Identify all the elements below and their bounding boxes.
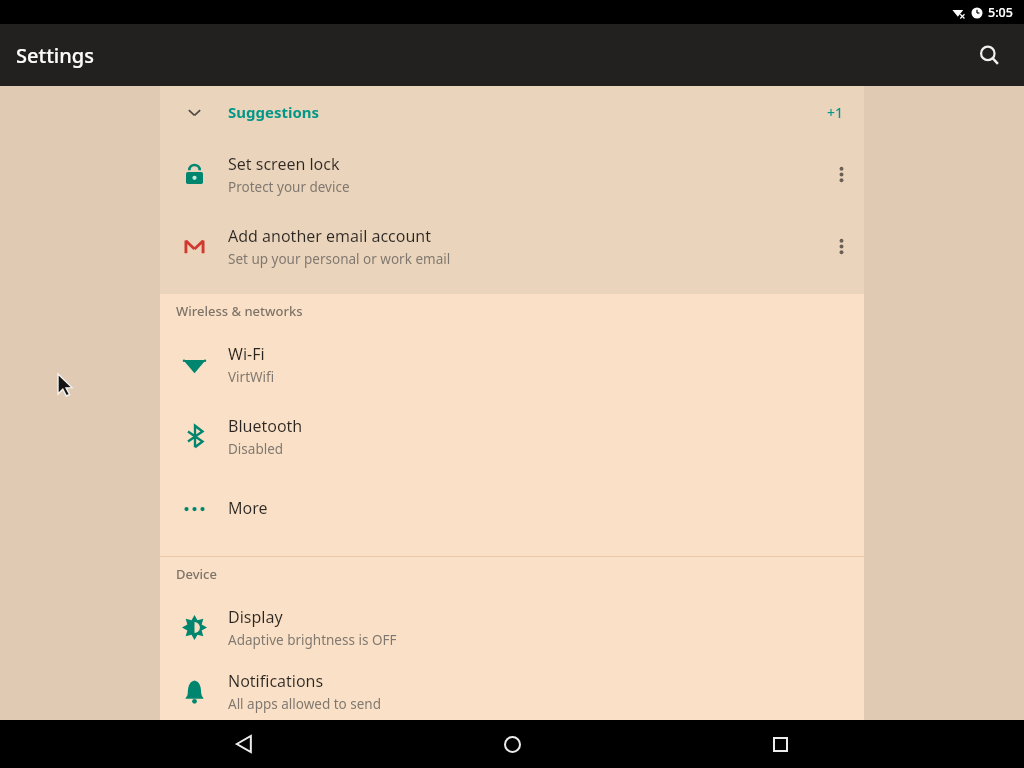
button[interactable]: Set screen lock (160, 138, 864, 210)
staticText: 5:05 (988, 4, 1013, 21)
staticText: Suggestions (228, 102, 320, 122)
staticText: Add another email account (228, 225, 432, 247)
staticText: Notifications (228, 670, 324, 692)
staticText: Settings (16, 42, 94, 69)
button[interactable]: Display (160, 591, 864, 663)
button[interactable]: Wi-Fi (160, 328, 864, 400)
button[interactable]: More options (818, 210, 864, 282)
staticText: All apps allowed to send (228, 695, 382, 713)
button[interactable]: Add another email account (160, 210, 864, 282)
button[interactable]: Notifications (160, 663, 864, 720)
staticText: Wireless & networks (176, 302, 303, 320)
button[interactable]: More options (818, 138, 864, 210)
staticText: Set screen lock (228, 153, 340, 175)
staticText: +1 (827, 103, 844, 122)
button[interactable]: More (160, 472, 864, 544)
staticText: Bluetooth (228, 415, 303, 437)
button[interactable]: Suggestions (160, 86, 864, 138)
staticText: Disabled (228, 440, 284, 458)
button[interactable]: Recent apps (756, 720, 804, 768)
staticText: Protect your device (228, 178, 350, 196)
staticText: Wi-Fi (228, 343, 265, 365)
staticText: VirtWifi (228, 368, 275, 386)
staticText: Set up your personal or work email (228, 250, 451, 268)
staticText: Display (228, 606, 283, 628)
button[interactable]: Home (488, 720, 536, 768)
button[interactable]: Bluetooth (160, 400, 864, 472)
staticText: Adaptive brightness is OFF (228, 631, 397, 649)
staticText: More (228, 497, 268, 519)
button[interactable]: Search (966, 32, 1012, 78)
staticText: Device (176, 565, 217, 583)
button[interactable]: Back (220, 720, 268, 768)
